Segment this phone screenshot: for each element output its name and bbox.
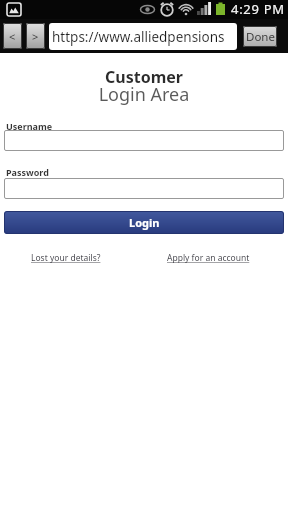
staticText: Password [6, 166, 49, 178]
button[interactable]: < [3, 23, 22, 49]
button[interactable]: Apply for an account [167, 252, 250, 264]
staticText: > [32, 29, 39, 44]
staticText: Login [129, 215, 160, 230]
button[interactable] [4, 130, 284, 151]
staticText: https://www.alliedpensions [52, 28, 225, 46]
staticText: Done [246, 29, 275, 45]
button[interactable]: Done [243, 26, 277, 47]
staticText: Login Area [0, 82, 288, 107]
staticText: 4:29 PM [231, 0, 285, 18]
button[interactable]: https://www.alliedpensions [49, 23, 237, 50]
button[interactable]: Lost your details? [31, 252, 101, 264]
button[interactable]: > [26, 23, 45, 49]
staticText: Customer [0, 66, 288, 88]
staticText: < [9, 29, 16, 44]
staticText: Username [6, 120, 53, 132]
button[interactable]: Login [4, 211, 284, 234]
button[interactable] [4, 178, 284, 199]
